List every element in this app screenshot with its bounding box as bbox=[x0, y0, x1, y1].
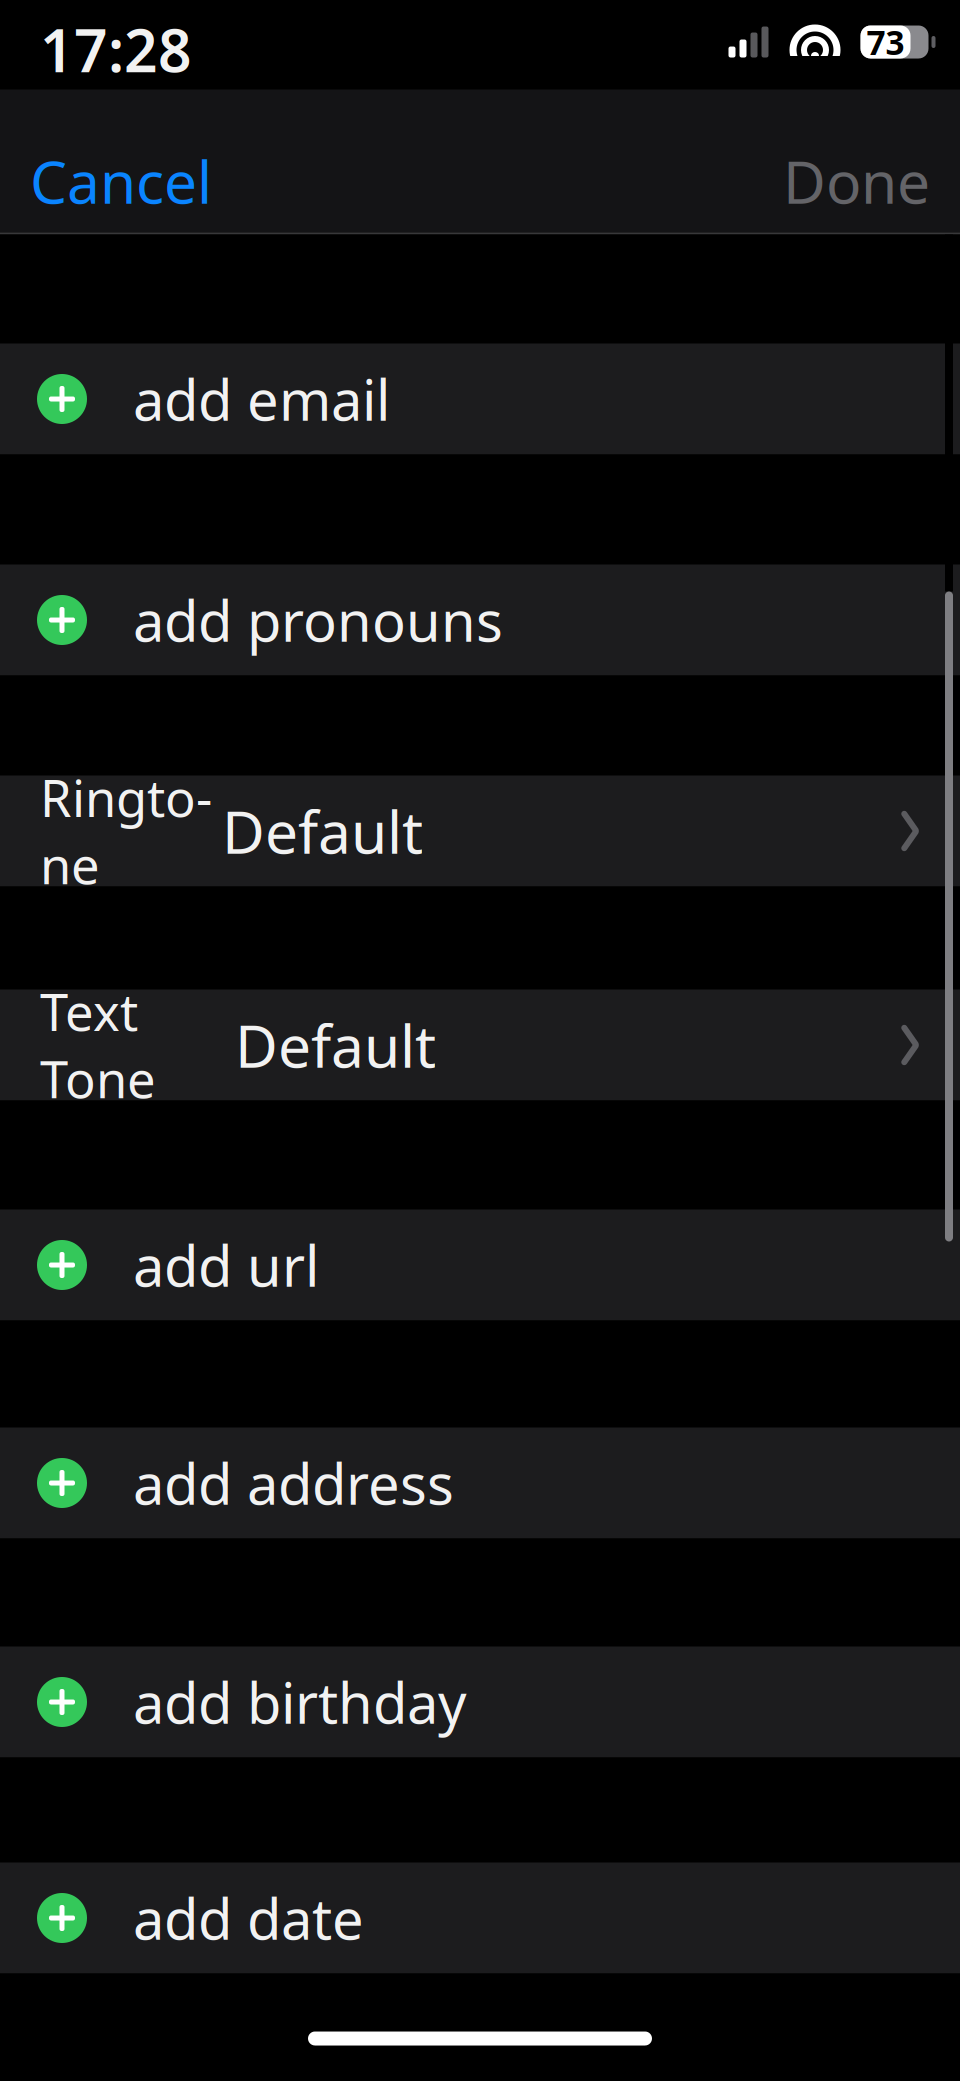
staticText: add email bbox=[133, 362, 390, 436]
staticText: add birthday bbox=[133, 1665, 467, 1739]
button[interactable]: add url bbox=[0, 1209, 960, 1320]
staticText: Text Tone bbox=[40, 978, 156, 1112]
staticText: 17:28 bbox=[40, 10, 192, 88]
button[interactable]: Ringtone bbox=[0, 775, 960, 886]
staticText: Done bbox=[783, 142, 930, 220]
button[interactable]: add birthday bbox=[0, 1646, 960, 1757]
button[interactable]: add date bbox=[0, 1862, 960, 1973]
staticText: add url bbox=[133, 1228, 319, 1302]
button[interactable]: add pronouns bbox=[0, 564, 960, 675]
staticText: Default bbox=[235, 1006, 436, 1084]
staticText: Cancel bbox=[30, 142, 212, 220]
staticText: add date bbox=[133, 1881, 364, 1955]
staticText: add pronouns bbox=[133, 583, 503, 657]
staticText: Default bbox=[222, 792, 423, 870]
button[interactable]: Cancel bbox=[0, 118, 242, 244]
staticText: 73 bbox=[866, 20, 904, 64]
button[interactable]: add email bbox=[0, 343, 960, 454]
button[interactable]: add address bbox=[0, 1427, 960, 1538]
staticText: Ringtone bbox=[40, 764, 212, 898]
button[interactable]: Done bbox=[753, 118, 960, 244]
button[interactable]: Text Tone bbox=[0, 989, 960, 1100]
staticText: add address bbox=[133, 1446, 454, 1520]
